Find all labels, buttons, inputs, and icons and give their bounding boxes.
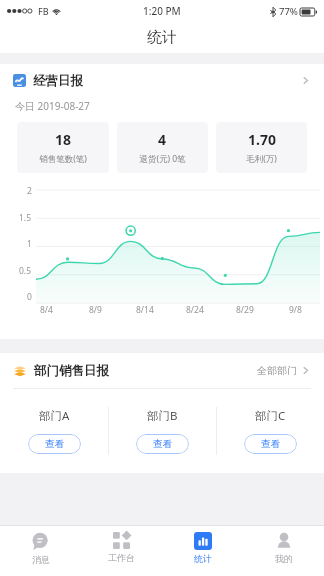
button[interactable]: 工作台 [81,526,162,576]
staticText: FB [38,5,49,17]
button[interactable]: 部门销售日报 [0,353,324,388]
button[interactable]: 我的 [243,526,324,576]
staticText: 今日 2019-08-27 [15,99,90,113]
other: 消息 [31,532,50,551]
staticText: 0 [27,291,32,303]
button[interactable]: 查看 [244,434,297,454]
staticText: 8/29 [236,304,254,316]
other: 工作台 [113,532,130,549]
staticText: 查看 [45,438,64,450]
other: 我的 [275,532,293,550]
staticText: 8/4 [40,304,53,316]
staticText: 77% [279,5,298,18]
button[interactable]: 查看 [28,434,81,454]
staticText: 1.5 [19,212,32,224]
staticText: 部门B [147,408,178,424]
staticText: 4 [158,130,167,149]
staticText: 销售笔数(笔) [39,153,87,165]
staticText: 全部部门 [257,364,297,377]
button[interactable]: 经营日报 [0,64,324,97]
staticText: 退货(元) 0笔 [139,153,186,165]
staticText: 部门A [39,408,70,424]
staticText: 部门销售日报 [34,363,109,379]
staticText: 2 [27,185,32,197]
staticText: 9/8 [289,304,302,316]
staticText: 统计 [194,553,212,564]
button[interactable]: 4 [117,122,208,173]
button[interactable]: 统计 [162,526,243,576]
staticText: 18 [55,130,72,149]
staticText: 0.5 [19,265,32,277]
button[interactable]: 查看 [136,434,189,454]
staticText: 我的 [275,553,293,564]
staticText: 消息 [32,554,50,565]
staticText: 查看 [261,438,280,450]
staticText: 统计 [147,28,177,47]
staticText: 毛利(万) [246,153,277,165]
other: 统计 [194,532,212,550]
staticText: 经营日报 [33,73,83,89]
staticText: 部门C [255,408,286,424]
staticText: 1:20 PM [143,4,181,18]
staticText: 1 [27,238,32,250]
staticText: 1.70 [248,130,276,149]
staticText: 8/14 [136,304,154,316]
button[interactable]: 18 [17,122,109,173]
staticText: 8/24 [186,304,204,316]
staticText: 工作台 [108,552,135,563]
button[interactable]: 1.70 [216,122,307,173]
staticText: 8/9 [89,304,102,316]
staticText: 查看 [153,438,172,450]
button[interactable]: 消息 [0,526,81,576]
